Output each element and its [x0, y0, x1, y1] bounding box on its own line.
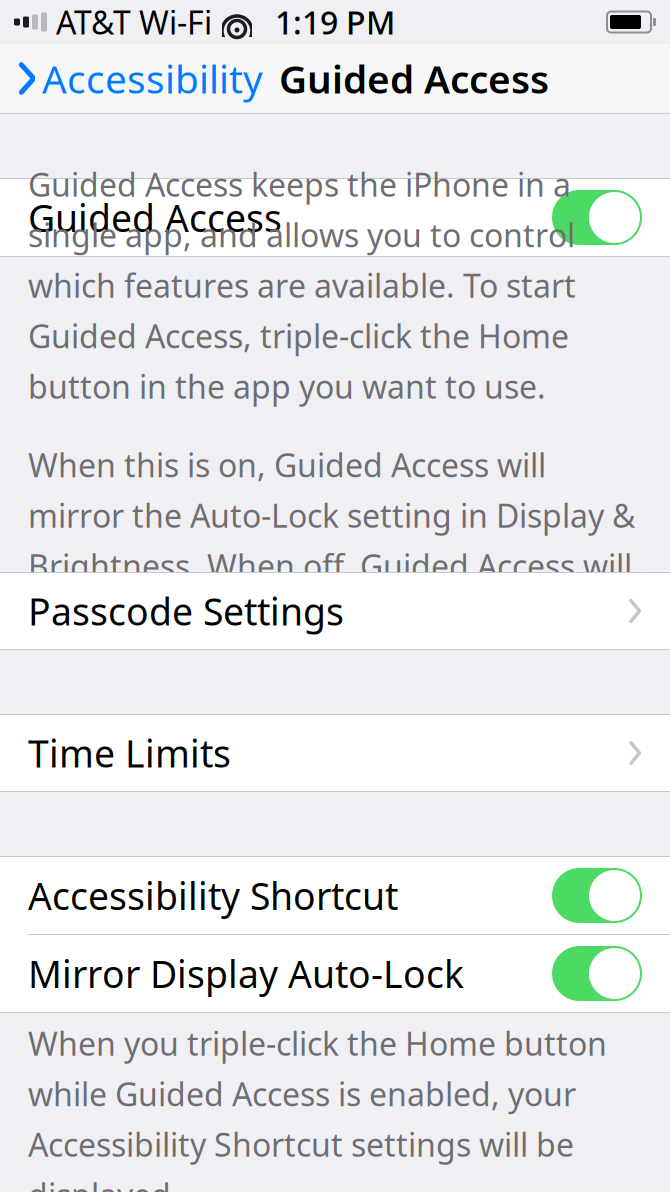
- staticText: When you triple-click the Home button wh…: [28, 1022, 607, 1192]
- button[interactable]: Mirror Display Auto-Lock: [0, 935, 670, 1012]
- staticText: 1:19 PM: [275, 1, 395, 43]
- staticText: Time Limits: [28, 728, 231, 778]
- button[interactable]: Accessibility: [0, 47, 263, 110]
- staticText: Guided Access: [279, 53, 549, 104]
- staticText: Mirror Display Auto-Lock: [28, 949, 464, 998]
- button[interactable]: Time Limits: [0, 715, 670, 791]
- staticText: Passcode Settings: [28, 586, 344, 636]
- button[interactable]: Passcode Settings: [0, 573, 670, 649]
- staticText: AT&T Wi-Fi: [56, 1, 212, 43]
- staticText: Accessibility Shortcut: [28, 871, 398, 920]
- staticText: Guided Access: [28, 193, 282, 242]
- button[interactable]: Guided Access: [0, 179, 670, 256]
- staticText: Accessibility: [42, 53, 263, 104]
- staticText: Guided Access keeps the iPhone in a sing…: [28, 163, 576, 407]
- button[interactable]: Accessibility Shortcut: [0, 857, 670, 934]
- staticText: When this is on, Guided Access will mirr…: [28, 443, 635, 688]
